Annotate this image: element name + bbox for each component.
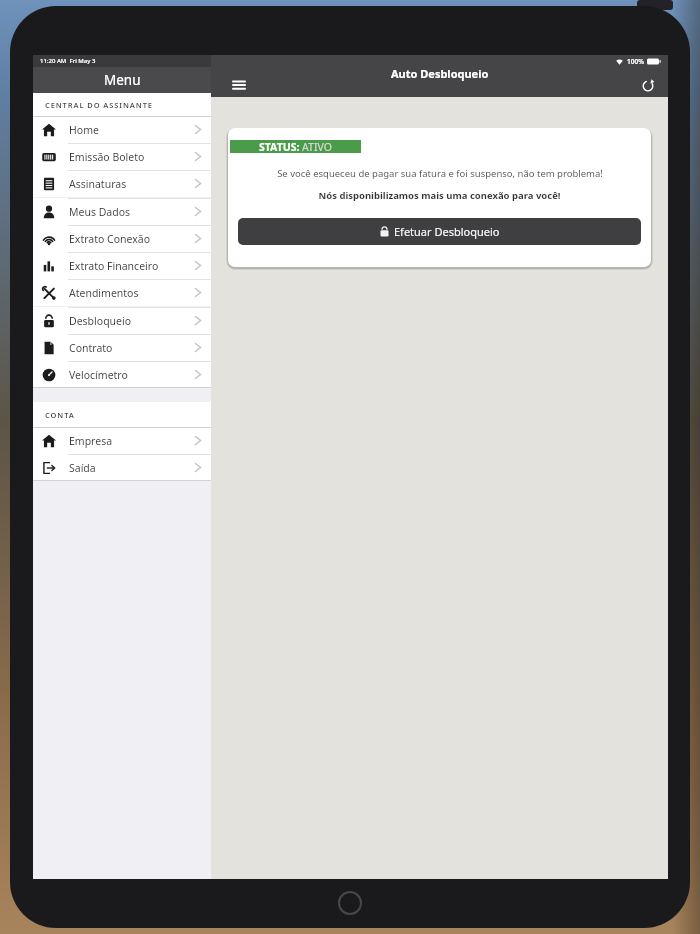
staticText: Meus Dados xyxy=(69,205,131,219)
staticText: Auto Desbloqueio xyxy=(391,66,489,81)
staticText: Desbloqueio xyxy=(69,314,132,328)
button[interactable]: Home xyxy=(33,116,211,143)
button[interactable]: Contrato xyxy=(33,334,211,361)
staticText: Empresa xyxy=(69,434,113,448)
staticText: Atendimentos xyxy=(69,286,139,300)
button[interactable]: Extrato Financeiro xyxy=(33,252,211,279)
button[interactable]: Meus Dados xyxy=(33,198,211,225)
button[interactable]: Assinaturas xyxy=(33,170,211,197)
staticText: CONTA xyxy=(45,410,75,420)
staticText: 100% xyxy=(627,57,644,66)
button[interactable]: Atendimentos xyxy=(33,279,211,306)
staticText: STATUS: ATIVO xyxy=(259,140,332,153)
button[interactable]: Efetuar Desbloqueio xyxy=(238,218,641,245)
staticText: Saída xyxy=(69,461,96,475)
staticText: Nós disponibilizamos mais uma conexão pa… xyxy=(318,189,561,202)
staticText: Assinaturas xyxy=(69,177,127,191)
staticText: Home xyxy=(69,123,99,137)
staticText: Emissão Boleto xyxy=(69,150,145,164)
staticText: Efetuar Desbloqueio xyxy=(394,224,500,239)
staticText: CENTRAL DO ASSINANTE xyxy=(45,100,153,110)
button[interactable]: Emissão Boleto xyxy=(33,143,211,170)
staticText: Velocímetro xyxy=(69,368,128,382)
staticText: Contrato xyxy=(69,341,113,355)
staticText: Menu xyxy=(104,71,141,89)
button[interactable] xyxy=(641,79,655,93)
button[interactable]: Empresa xyxy=(33,427,211,454)
button[interactable]: Saída xyxy=(33,454,211,481)
staticText: Extrato Conexão xyxy=(69,232,151,246)
button[interactable]: Desbloqueio xyxy=(33,307,211,334)
staticText: Se você esqueceu de pagar sua fatura e f… xyxy=(277,167,603,180)
staticText: 11:20 AM Fri May 3 xyxy=(40,57,96,65)
button[interactable]: Velocímetro xyxy=(33,361,211,388)
staticText: Extrato Financeiro xyxy=(69,259,159,273)
button[interactable]: Extrato Conexão xyxy=(33,225,211,252)
button[interactable] xyxy=(231,79,247,91)
